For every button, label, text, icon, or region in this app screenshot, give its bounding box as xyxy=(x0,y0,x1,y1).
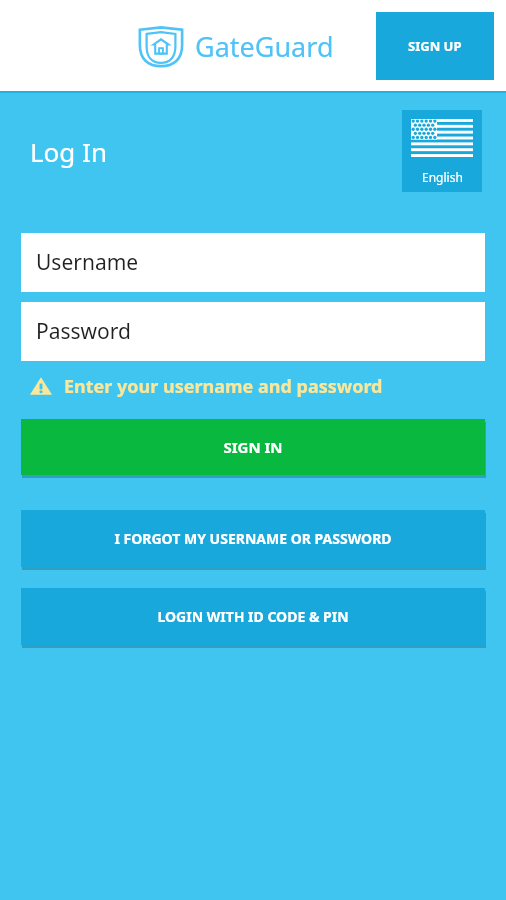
staticText: SIGN IN xyxy=(223,437,283,457)
staticText: SIGN UP xyxy=(408,37,462,55)
staticText: Log In xyxy=(30,134,107,169)
staticText: I FORGOT MY USERNAME OR PASSWORD xyxy=(114,529,392,548)
staticText: LOGIN WITH ID CODE & PIN xyxy=(157,607,349,626)
button[interactable]: Password xyxy=(21,302,485,361)
staticText: Username xyxy=(36,248,139,277)
staticText: Enter your username and password xyxy=(64,374,383,399)
button[interactable]: Username xyxy=(21,233,485,292)
button[interactable]: SIGN IN xyxy=(21,419,485,475)
staticText: GateGuard xyxy=(195,28,334,65)
button[interactable]: LOGIN WITH ID CODE & PIN xyxy=(21,588,485,645)
staticText: Password xyxy=(36,317,131,346)
button[interactable]: Select language: English xyxy=(402,110,482,192)
staticText: English xyxy=(422,169,463,185)
button[interactable]: SIGN UP xyxy=(376,12,494,80)
button[interactable]: I FORGOT MY USERNAME OR PASSWORD xyxy=(21,510,485,567)
